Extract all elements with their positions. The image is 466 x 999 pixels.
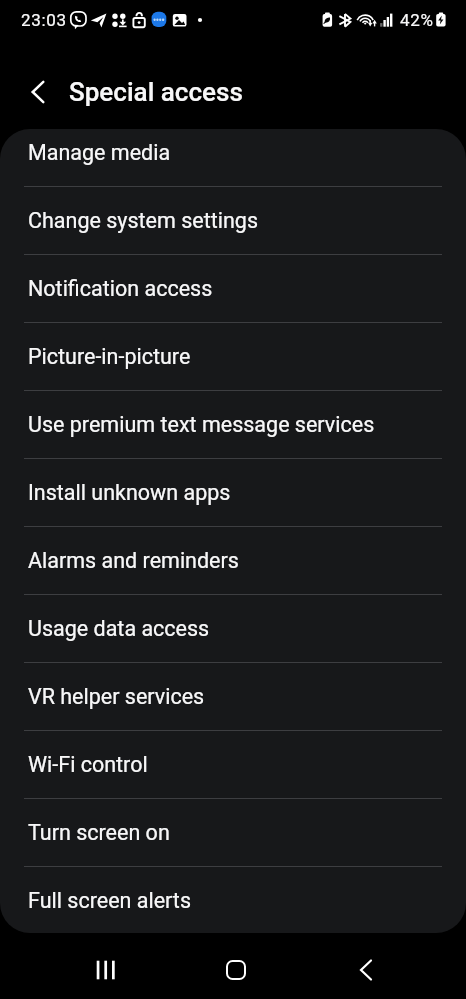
staticText: Notification access [28,276,213,301]
button[interactable]: Full screen alerts [0,867,466,933]
button[interactable]: Wi-Fi control [0,731,466,799]
button[interactable]: Navigate up [21,75,55,109]
button[interactable]: Change system settings [0,187,466,255]
button[interactable]: Alarms and reminders [0,527,466,595]
button[interactable]: Recent apps [74,940,134,999]
staticText: Manage media [28,140,171,165]
staticText: Change system settings [28,208,259,233]
staticText: 23:03 [21,10,67,30]
staticText: Install unknown apps [28,480,231,505]
staticText: Usage data access [28,616,210,641]
button[interactable]: Manage media [0,129,466,187]
staticText: Turn screen on [28,820,170,845]
staticText: Use premium text message services [28,412,375,437]
button[interactable]: VR helper services [0,663,466,731]
button[interactable]: Usage data access [0,595,466,663]
staticText: Wi-Fi control [28,752,148,777]
staticText: Full screen alerts [28,888,192,913]
staticText: Alarms and reminders [28,548,239,573]
button[interactable]: Home [206,940,266,999]
staticText: VR helper services [28,684,205,709]
button[interactable]: Turn screen on [0,799,466,867]
staticText: 42% [400,10,434,30]
button[interactable]: Picture-in-picture [0,323,466,391]
staticText: Special access [69,77,243,107]
button[interactable]: Notification access [0,255,466,323]
staticText: Picture-in-picture [28,344,191,369]
button[interactable]: Back [336,940,396,999]
button[interactable]: Use premium text message services [0,391,466,459]
button[interactable]: Install unknown apps [0,459,466,527]
